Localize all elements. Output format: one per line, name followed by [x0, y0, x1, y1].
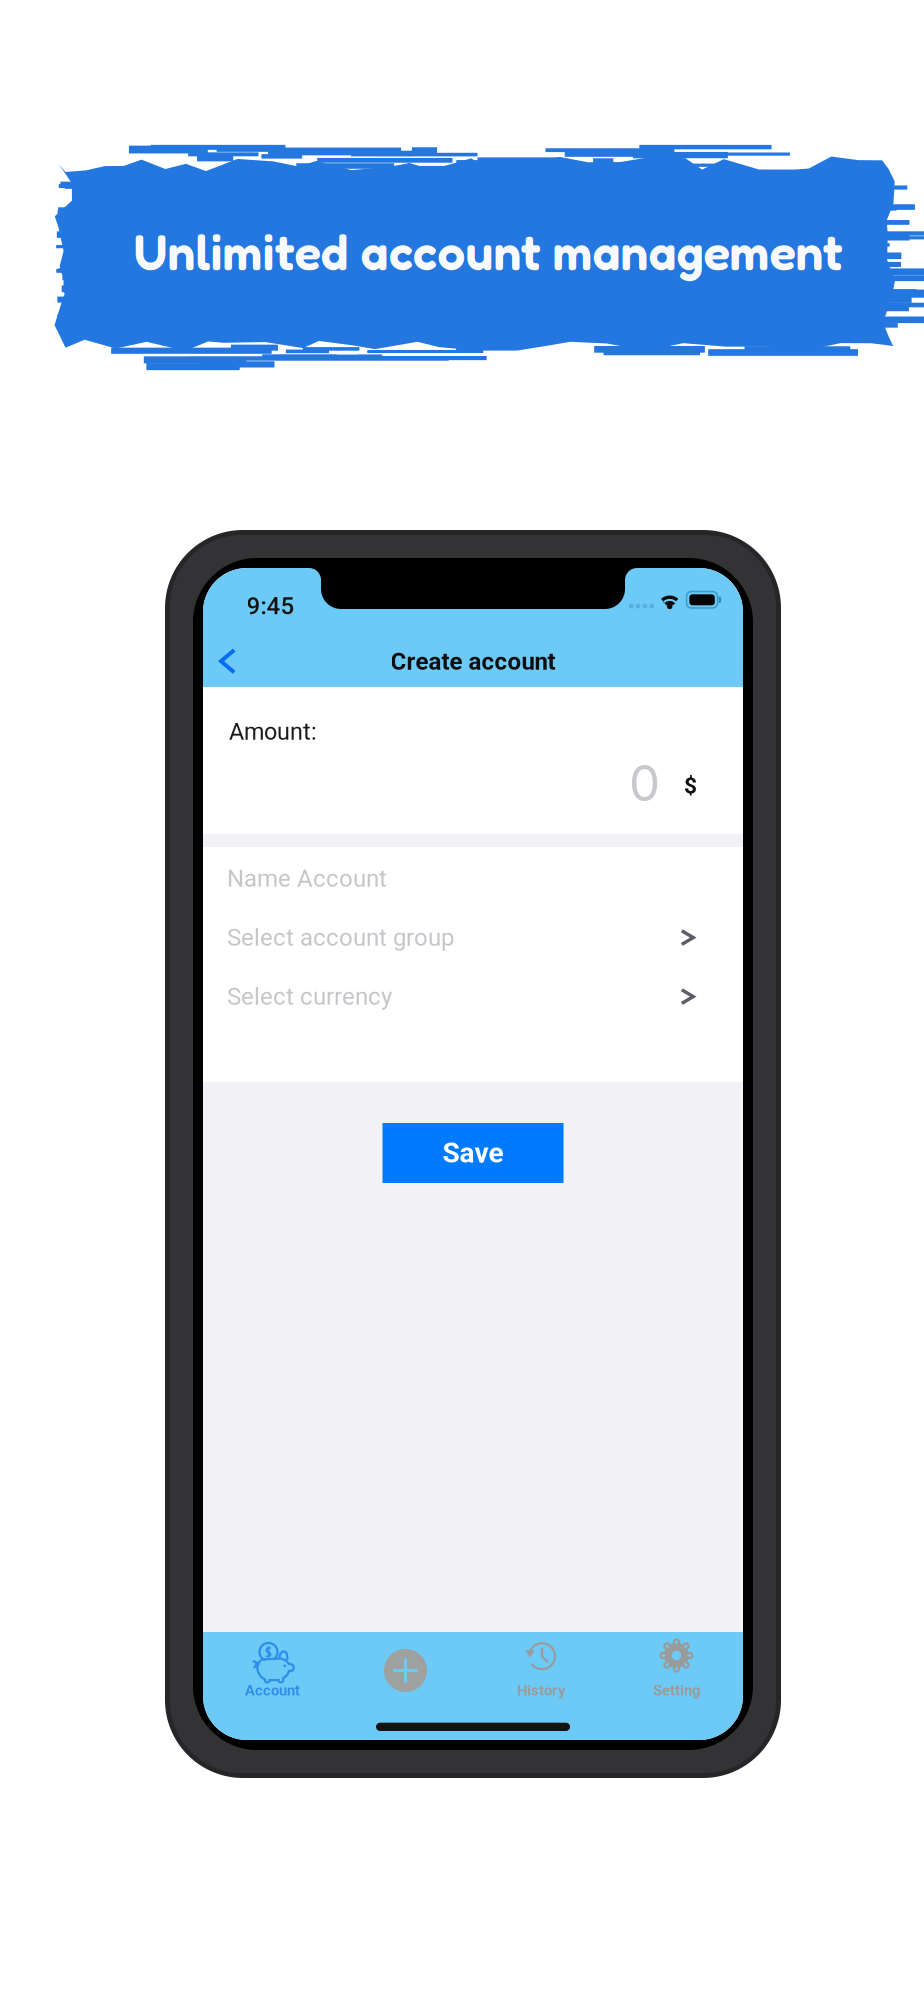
staticText: History	[517, 1682, 565, 1699]
button[interactable]: Add	[360, 1635, 450, 1705]
staticText: Save	[442, 1137, 503, 1169]
staticText: Amount:	[229, 718, 317, 745]
button[interactable]: Setting	[631, 1636, 721, 1706]
staticText: Create account	[390, 647, 555, 675]
staticText: Unlimited account management	[133, 222, 842, 282]
staticText: Select account group	[227, 923, 454, 951]
button[interactable]: Back	[204, 635, 251, 688]
button[interactable]: Select currency	[203, 967, 743, 1026]
staticText: 0	[629, 753, 660, 813]
button[interactable]: Name Account	[203, 849, 743, 908]
button[interactable]: History	[496, 1636, 586, 1706]
staticText: $	[684, 772, 697, 799]
button[interactable]: Account	[227, 1636, 317, 1706]
button[interactable]: Select account group	[203, 908, 743, 967]
staticText: Account	[245, 1682, 300, 1699]
button[interactable]: Save	[382, 1123, 563, 1183]
staticText: Select currency	[227, 982, 392, 1010]
staticText: 9:45	[246, 592, 294, 620]
staticText: Setting	[653, 1682, 700, 1699]
staticText: Name Account	[227, 864, 387, 892]
